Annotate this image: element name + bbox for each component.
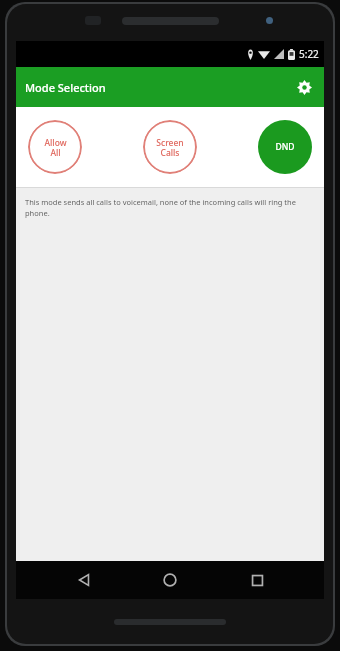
staticText: 5:22 [299,47,319,61]
button[interactable]: DND [258,120,312,174]
staticText: Mode Selection [25,80,106,95]
button[interactable]: Home [151,561,189,599]
staticText: Screen Calls [156,137,184,158]
button[interactable]: Recent apps [238,561,276,599]
button[interactable]: Screen Calls [143,120,197,174]
staticText: This mode sends all calls to voicemail, … [25,197,312,218]
staticText: DND [275,141,295,153]
button[interactable]: Allow All [28,120,82,174]
staticText: Allow All [44,137,67,158]
button[interactable]: Settings [290,73,318,101]
button[interactable]: Back [65,561,103,599]
